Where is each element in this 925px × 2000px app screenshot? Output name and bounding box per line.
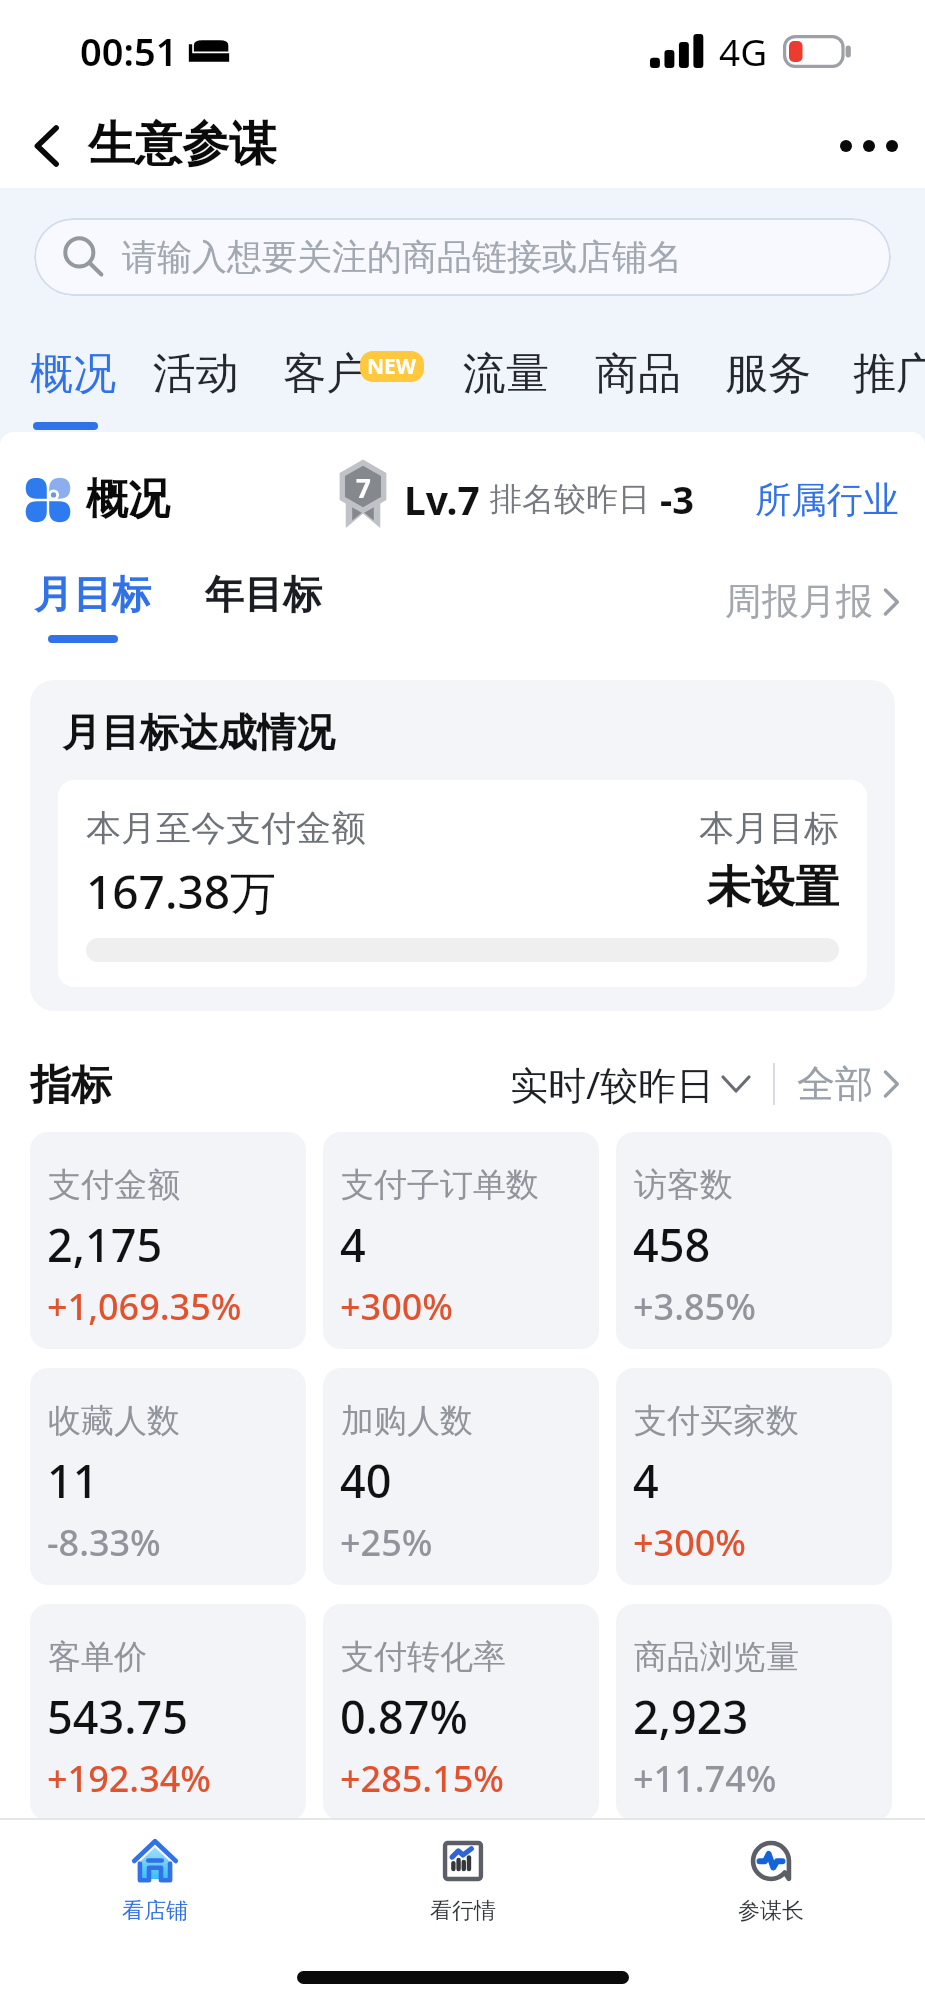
- staticText: 本月至今支付金额: [86, 806, 366, 850]
- staticText: -3: [660, 473, 694, 525]
- button[interactable]: 看店铺: [0, 1820, 309, 1940]
- button[interactable]: 服务: [707, 333, 823, 443]
- staticText: 指标: [30, 1060, 112, 1112]
- button[interactable]: 所属行业: [755, 477, 899, 522]
- staticText: NEW: [367, 352, 417, 381]
- staticText: 请输入想要关注的商品链接或店铺名: [122, 235, 682, 279]
- staticText: 加购人数: [341, 1400, 473, 1442]
- staticText: 0.87%: [340, 1686, 468, 1747]
- staticText: -8.33%: [47, 1518, 161, 1567]
- staticText: 4: [633, 1450, 659, 1511]
- staticText: 4: [340, 1214, 366, 1275]
- button[interactable]: 支付转化率: [323, 1604, 599, 1818]
- button[interactable]: Back: [12, 111, 82, 181]
- button[interactable]: 活动: [135, 333, 251, 443]
- staticText: 周报月报: [725, 578, 873, 625]
- staticText: 543.75: [47, 1686, 188, 1747]
- button[interactable]: 支付子订单数: [323, 1132, 599, 1349]
- button[interactable]: 请输入想要关注的商品链接或店铺名: [34, 218, 891, 296]
- button[interactable]: 参谋长: [617, 1820, 925, 1940]
- staticText: 支付转化率: [341, 1636, 506, 1678]
- button[interactable]: 客户: [265, 333, 417, 443]
- button[interactable]: 访客数: [616, 1132, 892, 1349]
- staticText: +192.34%: [47, 1754, 212, 1803]
- button[interactable]: 推广: [835, 333, 925, 443]
- staticText: 概况: [30, 347, 116, 401]
- button[interactable]: 加购人数: [323, 1368, 599, 1585]
- staticText: 全部: [797, 1060, 873, 1108]
- staticText: 月目标达成情况: [62, 708, 335, 757]
- staticText: 实时/较昨日: [510, 1058, 715, 1110]
- staticText: +1,069.35%: [47, 1282, 242, 1331]
- staticText: 商品: [595, 347, 681, 401]
- button[interactable]: 客单价: [30, 1604, 306, 1818]
- button[interactable]: 支付买家数: [616, 1368, 892, 1585]
- button[interactable]: 收藏人数: [30, 1368, 306, 1585]
- button[interactable]: 周报月报: [725, 578, 899, 625]
- staticText: 所属行业: [755, 477, 899, 522]
- staticText: Lv.7: [404, 473, 480, 526]
- staticText: 月目标: [34, 570, 151, 619]
- staticText: 客单价: [48, 1636, 147, 1678]
- staticText: 7: [356, 470, 371, 505]
- staticText: +11.74%: [633, 1754, 777, 1803]
- staticText: +300%: [633, 1518, 747, 1567]
- staticText: 支付子订单数: [341, 1164, 539, 1206]
- staticText: +25%: [340, 1518, 433, 1567]
- staticText: 看行情: [430, 1897, 496, 1925]
- button[interactable]: 看行情: [309, 1820, 617, 1940]
- staticText: 40: [340, 1450, 392, 1511]
- staticText: 2,175: [47, 1214, 163, 1275]
- staticText: 年目标: [205, 570, 322, 619]
- staticText: 看店铺: [122, 1897, 188, 1925]
- button[interactable]: 概况: [12, 333, 128, 443]
- staticText: +3.85%: [633, 1282, 756, 1331]
- staticText: 11: [47, 1450, 99, 1511]
- button[interactable]: 商品浏览量: [616, 1604, 892, 1818]
- staticText: 本月目标: [699, 806, 839, 850]
- staticText: 排名较昨日: [490, 479, 650, 519]
- button[interactable]: More options: [829, 106, 909, 186]
- staticText: 客户: [283, 347, 369, 401]
- staticText: 未设置: [707, 860, 839, 915]
- button[interactable]: 全部: [797, 1060, 899, 1108]
- staticText: +285.15%: [340, 1754, 505, 1803]
- staticText: 收藏人数: [48, 1400, 180, 1442]
- staticText: 167.38万: [86, 860, 277, 923]
- staticText: 概况: [86, 473, 170, 526]
- staticText: 4G: [719, 26, 768, 76]
- staticText: 458: [633, 1214, 711, 1275]
- staticText: 流量: [463, 347, 549, 401]
- staticText: +300%: [340, 1282, 454, 1331]
- staticText: 2,923: [633, 1686, 749, 1747]
- staticText: 服务: [725, 347, 811, 401]
- staticText: 支付金额: [48, 1164, 180, 1206]
- button[interactable]: 商品: [577, 333, 693, 443]
- staticText: 访客数: [634, 1164, 733, 1206]
- staticText: 参谋长: [738, 1897, 804, 1925]
- staticText: 活动: [153, 347, 239, 401]
- staticText: 00:51: [80, 25, 178, 77]
- staticText: 生意参谋: [88, 115, 276, 174]
- staticText: 推广: [853, 347, 925, 401]
- button[interactable]: 年目标: [194, 570, 324, 650]
- button[interactable]: 流量: [445, 333, 561, 443]
- staticText: 支付买家数: [634, 1400, 799, 1442]
- button[interactable]: 实时/较昨日: [510, 1058, 751, 1110]
- button[interactable]: 支付金额: [30, 1132, 306, 1349]
- button[interactable]: 月目标达成情况: [30, 680, 895, 1011]
- button[interactable]: 月目标: [30, 570, 180, 650]
- staticText: 商品浏览量: [634, 1636, 799, 1678]
